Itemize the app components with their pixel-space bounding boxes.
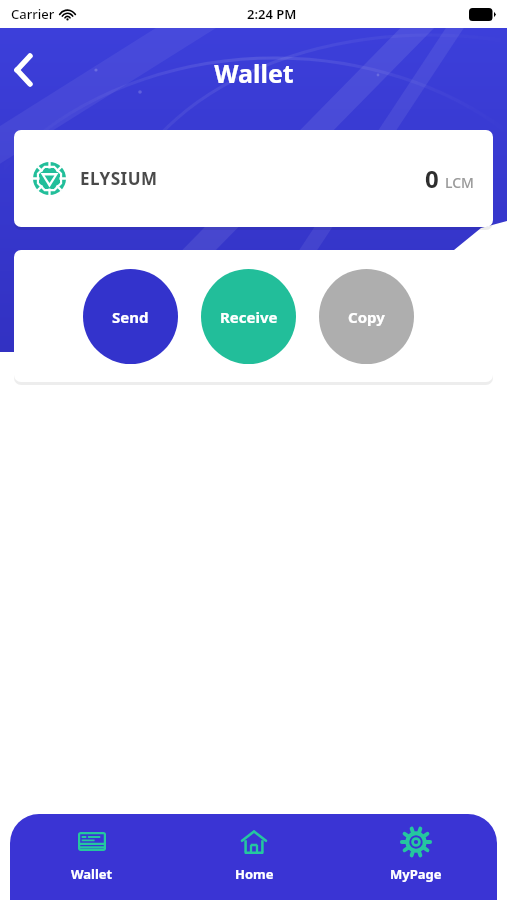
staticText: ELYSIUM [80,167,158,190]
staticText: Wallet [214,56,294,90]
staticText: LCM [445,173,474,192]
staticText: Copy [348,307,385,327]
button[interactable]: Receive [201,269,296,364]
staticText: Home [235,865,274,883]
button[interactable]: Home [173,827,335,900]
staticText: Carrier [11,5,55,23]
button[interactable]: Send [83,269,178,364]
staticText: MyPage [390,865,442,883]
staticText: 2:24 PM [247,5,297,23]
button[interactable]: MyPage [335,827,497,900]
button[interactable]: ELYSIUM [14,130,493,227]
button[interactable]: Back [4,50,44,90]
button[interactable]: Copy [319,269,414,364]
staticText: 0 [425,162,439,195]
staticText: Receive [220,307,278,327]
staticText: Wallet [71,865,113,883]
button[interactable]: Wallet [10,827,173,900]
staticText: Send [112,307,149,327]
